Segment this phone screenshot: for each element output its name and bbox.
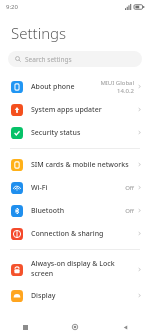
staticText: screen <box>31 269 54 279</box>
staticText: MIUI Global <box>100 79 134 87</box>
other: Always-on display and Lock screen <box>11 264 23 276</box>
staticText: System apps updater <box>31 105 102 115</box>
button[interactable]: Search settings <box>8 51 142 67</box>
button[interactable]: About phone <box>0 75 150 98</box>
button[interactable]: Connection and sharing <box>0 222 150 245</box>
other: Bluetooth <box>11 205 23 217</box>
other: Display <box>11 290 23 302</box>
staticText: Off <box>125 184 134 192</box>
button[interactable]: Always-on display and Lock screen <box>0 254 150 284</box>
button[interactable]: Bluetooth <box>0 199 150 222</box>
button[interactable]: Back <box>100 319 150 335</box>
other: About phone <box>11 81 23 93</box>
staticText: Always-on display & Lock <box>31 259 115 269</box>
staticText: SIM cards & mobile networks <box>31 160 129 170</box>
staticText: Wi-Fi <box>31 183 48 193</box>
button[interactable]: Recents <box>0 319 50 335</box>
staticText: Settings <box>11 23 67 43</box>
staticText: 14.0.2 <box>117 87 134 95</box>
staticText: About phone <box>31 82 75 92</box>
button[interactable]: Display <box>0 284 150 307</box>
button[interactable]: Security status <box>0 121 150 144</box>
staticText: Off <box>125 207 134 215</box>
button[interactable]: Wi-Fi <box>0 176 150 199</box>
staticText: Connection & sharing <box>31 229 104 239</box>
other: Wi-Fi <box>11 182 23 194</box>
button[interactable]: Home <box>50 319 100 335</box>
other: Connection and sharing <box>11 228 23 240</box>
other: SIM cards and mobile networks <box>11 159 23 171</box>
staticText: Display <box>31 291 56 301</box>
staticText: 9:20 <box>6 3 18 11</box>
staticText: Security status <box>31 128 81 138</box>
staticText: Search settings <box>25 55 72 64</box>
other: System apps updater <box>11 104 23 116</box>
other: Security status <box>11 127 23 139</box>
button[interactable]: System apps updater <box>0 98 150 121</box>
button[interactable]: SIM cards and mobile networks <box>0 153 150 176</box>
staticText: Bluetooth <box>31 206 65 216</box>
